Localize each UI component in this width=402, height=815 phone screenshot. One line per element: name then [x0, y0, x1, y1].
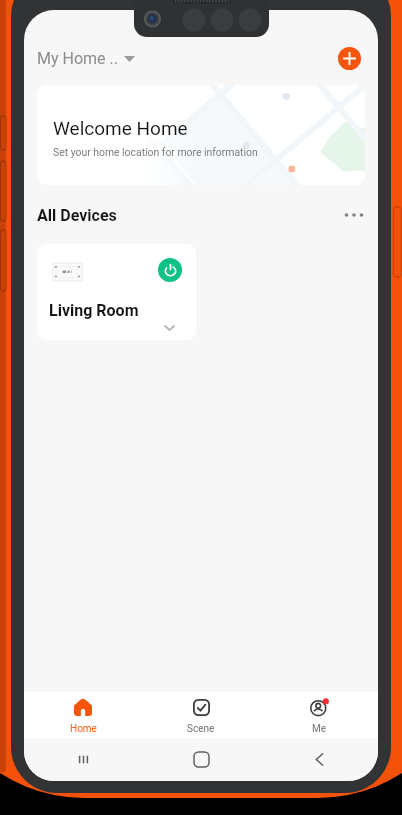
- staticText: My Home ..: [37, 49, 118, 68]
- staticText: All Devices: [37, 206, 117, 224]
- staticText: Home: [70, 723, 97, 735]
- button[interactable]: Home: [24, 692, 142, 738]
- button[interactable]: Welcome Home: [37, 85, 365, 185]
- staticText: Living Room: [49, 301, 139, 320]
- button[interactable]: Add device: [338, 47, 361, 70]
- other: Recents: [77, 753, 90, 766]
- staticText: Set your home location for more informat…: [53, 146, 258, 158]
- button[interactable]: My Home ..: [32, 45, 140, 72]
- button[interactable]: Power toggle: [158, 258, 182, 282]
- other: Home: [194, 752, 209, 767]
- button[interactable]: Me: [260, 692, 378, 738]
- button[interactable]: More options: [341, 206, 367, 224]
- other: Back: [315, 752, 324, 767]
- staticText: Scene: [187, 723, 215, 735]
- staticText: Me: [312, 723, 327, 735]
- button[interactable]: Scene: [142, 692, 260, 738]
- staticText: Welcome Home: [53, 117, 188, 139]
- button[interactable]: Power toggle: [37, 244, 196, 340]
